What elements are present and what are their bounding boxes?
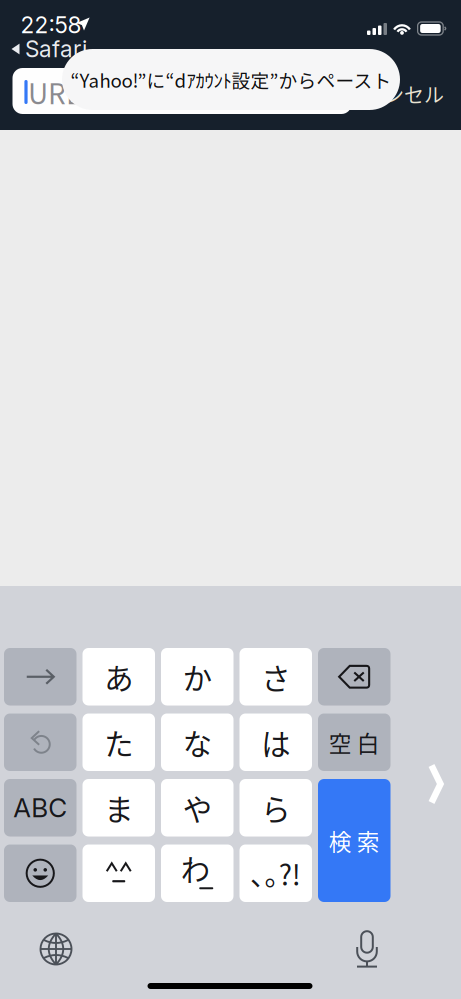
button[interactable]: さ (239, 648, 312, 705)
staticText: な (183, 721, 212, 763)
staticText: は (261, 721, 290, 763)
button[interactable]: Switch keyboard (30, 923, 82, 975)
button[interactable]: Safari (11, 37, 91, 61)
button[interactable] (318, 648, 390, 705)
button[interactable]: 空 白 (318, 713, 390, 771)
button[interactable]: は (239, 713, 312, 771)
button[interactable] (4, 648, 76, 705)
button[interactable]: わ (161, 844, 233, 902)
staticText: さ (261, 655, 290, 698)
staticText: ら (261, 786, 290, 829)
staticText: わ (181, 847, 210, 889)
button[interactable] (4, 713, 76, 771)
button[interactable]: Dictation (341, 919, 393, 971)
button[interactable]: ら (239, 779, 312, 836)
button[interactable] (4, 844, 76, 902)
button[interactable] (82, 844, 155, 902)
staticText: “Yahoo!”に“dｱｶｳﾝﾄ設定”からペースト (70, 66, 391, 93)
staticText: キャンセル (344, 79, 444, 108)
staticText: た (104, 721, 133, 763)
button[interactable]: た (82, 713, 155, 771)
staticText: か (183, 655, 212, 698)
staticText: や (183, 786, 212, 829)
staticText: 検 索 (329, 824, 380, 857)
staticText: あ (104, 655, 133, 698)
button[interactable]: 検 索 (318, 779, 390, 902)
staticText: Safari (25, 35, 87, 63)
button[interactable]: な (161, 713, 233, 771)
staticText: ､｡?! (251, 853, 301, 893)
button[interactable]: キャンセル (342, 76, 444, 112)
staticText: URL、 (28, 72, 109, 112)
button[interactable]: や (161, 779, 233, 836)
button[interactable]: “Yahoo!”に“dｱｶｳﾝﾄ設定”からペースト (62, 49, 400, 110)
staticText: ま (104, 786, 133, 829)
button[interactable]: あ (82, 648, 155, 705)
staticText: ABC (13, 792, 67, 823)
button[interactable]: ABC (4, 779, 76, 836)
button[interactable]: ま (82, 779, 155, 836)
button[interactable]: か (161, 648, 233, 705)
button[interactable]: ､｡?! (239, 844, 312, 902)
staticText: 22:58 (20, 11, 81, 39)
staticText: 空 白 (329, 726, 380, 759)
